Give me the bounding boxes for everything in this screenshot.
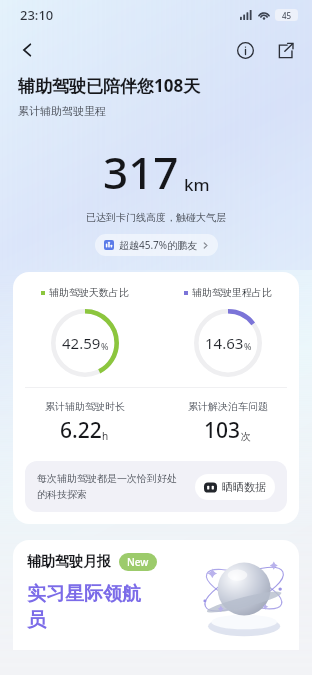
button[interactable]: 晒晒数据 bbox=[195, 474, 275, 500]
button[interactable]: Share bbox=[268, 33, 302, 67]
staticText: h bbox=[102, 429, 109, 443]
button[interactable]: 辅助驾驶月报 bbox=[13, 540, 299, 650]
staticText: 103 bbox=[204, 416, 241, 445]
staticText: % bbox=[244, 340, 252, 352]
button[interactable]: 超越45.7%的鹏友 bbox=[95, 234, 218, 256]
staticText: km bbox=[184, 173, 210, 196]
staticText: 42.59 bbox=[62, 333, 101, 353]
staticText: 辅助驾驶月报 bbox=[27, 553, 111, 571]
staticText: 14.63 bbox=[205, 333, 244, 353]
staticText: 累计辅助驾驶里程 bbox=[18, 104, 106, 118]
button[interactable]: Info bbox=[228, 33, 262, 67]
staticText: 已达到卡门线高度，触碰大气层 bbox=[0, 211, 312, 224]
staticText: 辅助驾驶天数占比 bbox=[49, 286, 129, 299]
button[interactable]: 辅助驾驶天数占比 bbox=[13, 272, 299, 524]
staticText: 累计解决泊车问题 bbox=[188, 400, 268, 413]
staticText: 每次辅助驾驶都是一次恰到好处 的科技探索 bbox=[37, 472, 187, 501]
button[interactable]: 每次辅助驾驶都是一次恰到好处 的科技探索 bbox=[25, 461, 287, 512]
staticText: 6.22 bbox=[60, 416, 102, 445]
staticText: 晒晒数据 bbox=[222, 480, 266, 494]
staticText: 超越45.7%的鹏友 bbox=[119, 238, 198, 252]
staticText: % bbox=[101, 340, 109, 352]
staticText: 317 bbox=[103, 142, 179, 202]
staticText: 辅助驾驶里程占比 bbox=[192, 286, 272, 299]
staticText: 实习星际领航 员 bbox=[27, 582, 141, 632]
staticText: 累计辅助驾驶时长 bbox=[45, 400, 125, 413]
staticText: New bbox=[127, 555, 149, 569]
staticText: 45 bbox=[282, 10, 292, 21]
button[interactable]: Back bbox=[8, 32, 44, 68]
staticText: 辅助驾驶已陪伴您108天 bbox=[18, 74, 201, 97]
staticText: 次 bbox=[241, 430, 251, 443]
staticText: 23:10 bbox=[20, 6, 54, 24]
